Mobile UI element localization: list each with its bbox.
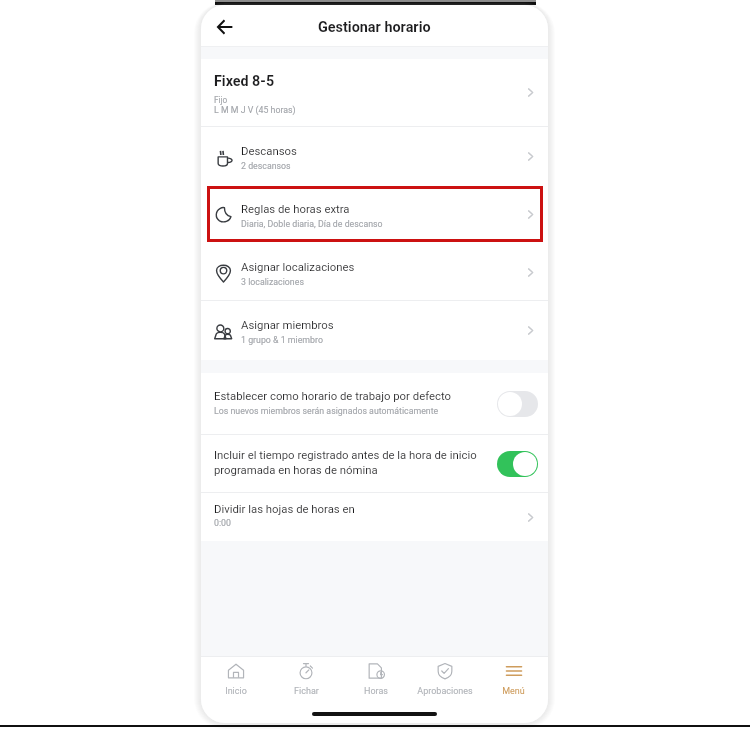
staticText: Fichar [294,686,319,697]
staticText: Establecer como horario de trabajo por d… [214,389,451,402]
staticText: L M M J V (45 horas) [214,105,296,115]
button[interactable]: Dividir las hojas de horas en [201,493,548,541]
staticText: Diaria, Doble diaria, Día de descanso [241,219,383,229]
button[interactable]: Horas [341,662,410,714]
button[interactable]: Fichar [271,662,341,714]
staticText: 3 localizaciones [241,277,304,287]
staticText: Horas [364,686,388,697]
staticText: Asignar miembros [241,318,334,331]
button[interactable]: Switch off [497,391,538,417]
button[interactable]: Asignar localizaciones [201,241,548,300]
staticText: Asignar localizaciones [241,260,355,273]
staticText: Gestionar horario [318,19,431,36]
staticText: Descansos [241,144,297,157]
button[interactable]: Descansos [201,127,548,185]
staticText: Fijo [214,95,228,105]
staticText: Menú [502,686,525,697]
button[interactable]: Fixed 8-5 [201,59,548,126]
staticText: Inicio [225,686,247,697]
staticText: 2 descansos [241,161,291,171]
button[interactable]: Back [210,12,240,42]
button[interactable]: Establecer como horario de trabajo por d… [201,373,548,434]
button[interactable]: Menú [479,662,548,714]
staticText: 1 grupo & 1 miembro [241,335,323,345]
button[interactable]: Asignar miembros [201,301,548,359]
staticText: Aprobaciones [417,686,473,697]
button[interactable]: Aprobaciones [410,662,479,714]
button[interactable]: Incluir el tiempo registrado antes de la… [201,435,548,492]
staticText: Los nuevos miembros serán asignados auto… [214,406,439,416]
button[interactable]: Switch on [497,451,538,477]
staticText: Fixed 8-5 [214,73,275,90]
staticText: Incluir el tiempo registrado antes de la… [214,448,496,477]
button[interactable]: Inicio [201,662,271,714]
staticText: Reglas de horas extra [241,202,350,215]
button[interactable]: Reglas de horas extra [201,185,548,241]
staticText: Dividir las hojas de horas en [214,502,355,515]
staticText: 0:00 [214,518,231,528]
